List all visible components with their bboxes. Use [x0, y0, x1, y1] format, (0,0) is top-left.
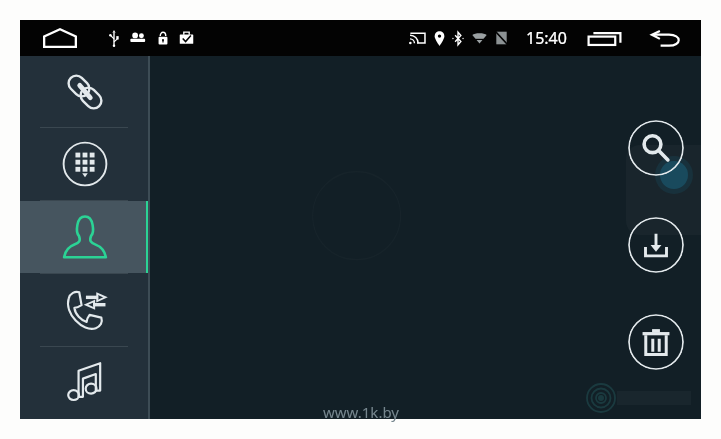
button[interactable]: Delete	[628, 314, 684, 370]
button[interactable]: Home	[43, 28, 77, 48]
button[interactable]: Contacts	[20, 201, 150, 273]
button[interactable]: Search	[628, 120, 684, 176]
staticText: www.1k.by	[323, 402, 399, 422]
button[interactable]: Back	[648, 29, 683, 48]
button[interactable]: Call history	[20, 274, 150, 346]
button[interactable]: Bluetooth pairing	[20, 56, 150, 127]
button[interactable]: Recents	[586, 29, 623, 48]
staticText: 15:40	[526, 27, 567, 49]
button[interactable]: Music	[20, 347, 150, 419]
button[interactable]: Dialpad	[20, 128, 150, 200]
button[interactable]: Download	[628, 217, 684, 273]
